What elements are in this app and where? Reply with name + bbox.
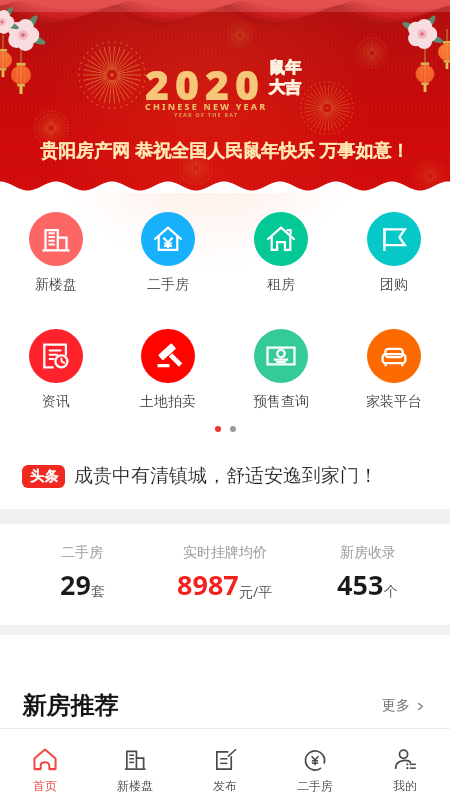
staticText: 二手房 [297, 778, 333, 793]
staticText: 元/平 [239, 582, 273, 601]
button[interactable]: 新楼盘 [90, 729, 180, 800]
staticText: 新楼盘 [117, 778, 153, 793]
staticText: 8987 [177, 566, 239, 603]
staticText: 头条 [30, 468, 58, 486]
button[interactable]: 二手房 [112, 212, 224, 294]
staticText: 发布 [213, 778, 237, 793]
staticText: 家装平台 [366, 393, 422, 411]
staticText: YEAR OF THE RAT [174, 111, 239, 118]
staticText: 更多 [382, 697, 410, 715]
button[interactable]: 家装平台 [337, 329, 450, 411]
staticText: 资讯 [42, 393, 70, 411]
button[interactable]: 新楼盘 [0, 212, 112, 294]
staticText: 我的 [393, 778, 417, 793]
staticText: 贵阳房产网 恭祝全国人民鼠年快乐 万事如意！ [40, 138, 410, 163]
button[interactable]: 租房 [224, 212, 337, 294]
staticText: 租房 [267, 276, 295, 294]
staticText: 29 [60, 566, 91, 603]
button[interactable]: 首页 [0, 729, 90, 800]
button[interactable]: 我的 [360, 729, 450, 800]
staticText: 鼠年 大吉 [269, 58, 301, 98]
staticText: 2020 [145, 56, 266, 112]
staticText: 套 [91, 583, 105, 601]
staticText: 土地拍卖 [140, 393, 196, 411]
staticText: 实时挂牌均价 [183, 544, 267, 562]
button[interactable]: 资讯 [0, 329, 112, 411]
staticText: 首页 [33, 778, 57, 793]
button[interactable]: 团购 [337, 212, 450, 294]
staticText: 二手房 [147, 276, 189, 294]
staticText: 个 [384, 583, 398, 601]
staticText: 新房收录 [340, 544, 396, 562]
button[interactable]: 更多 [378, 693, 430, 719]
staticText: 成贵中有清镇城，舒适安逸到家门！ [74, 464, 378, 488]
staticText: 二手房 [61, 544, 103, 562]
button[interactable]: 土地拍卖 [112, 329, 224, 411]
staticText: CHINESE NEW YEAR [145, 100, 268, 112]
staticText: 453 [337, 566, 384, 603]
button[interactable]: 预售查询 [224, 329, 337, 411]
staticText: 新楼盘 [35, 276, 77, 294]
button[interactable]: 发布 [180, 729, 270, 800]
staticText: 预售查询 [253, 393, 309, 411]
button[interactable]: 头条 [0, 447, 450, 509]
staticText: 新房推荐 [22, 691, 118, 721]
staticText: 团购 [380, 276, 408, 294]
button[interactable]: 二手房 [270, 729, 360, 800]
